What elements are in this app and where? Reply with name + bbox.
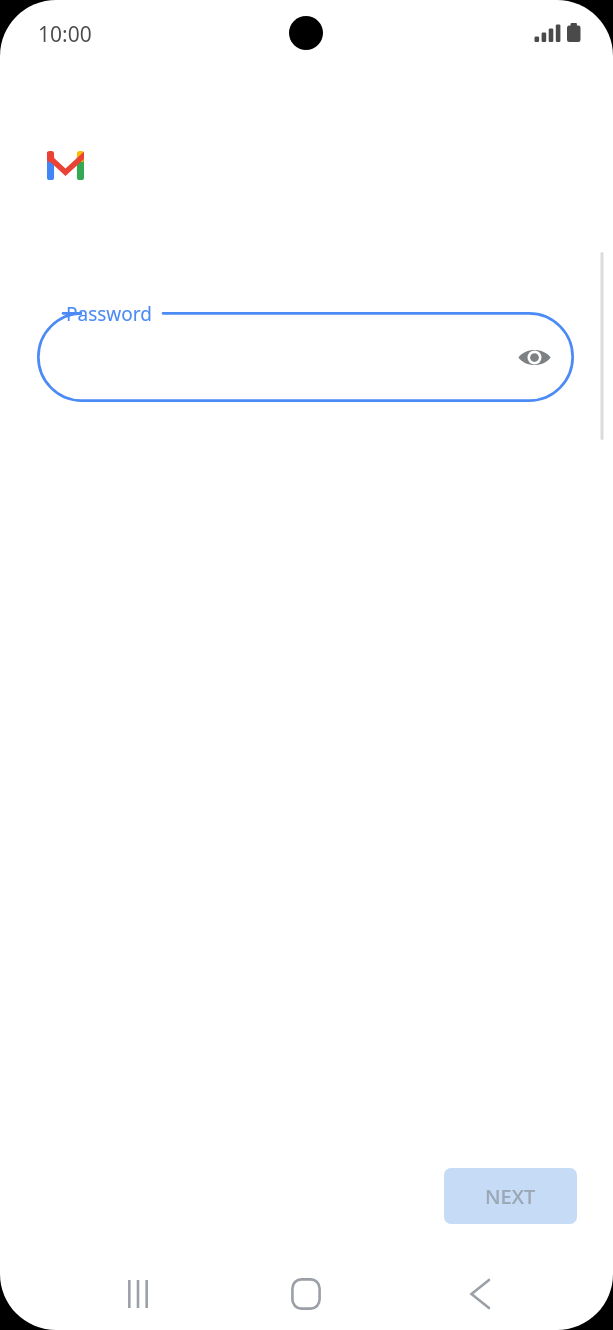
staticText: Password: [66, 301, 152, 327]
button[interactable]: Home: [274, 1262, 338, 1326]
button[interactable]: Back: [446, 1262, 514, 1326]
button[interactable]: NEXT: [444, 1168, 577, 1224]
button[interactable]: Show password: [511, 334, 557, 380]
staticText: 10:00: [38, 20, 92, 49]
button[interactable]: Password: [37, 312, 574, 402]
staticText: NEXT: [485, 1183, 536, 1210]
button[interactable]: Recent apps: [102, 1262, 174, 1326]
